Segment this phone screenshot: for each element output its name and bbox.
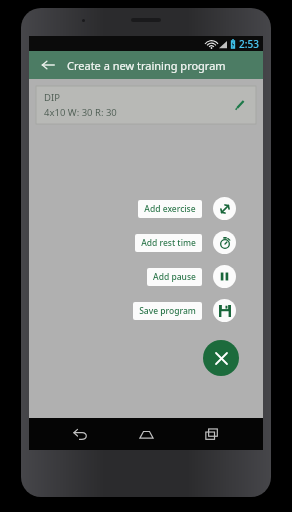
button[interactable]: Save program (133, 302, 202, 320)
staticText: Add exercise (144, 203, 196, 215)
staticText: Add pause (153, 271, 196, 283)
staticText: 4x10 W: 30 R: 30 (44, 106, 117, 119)
staticText: Create a new training program (67, 58, 226, 73)
button[interactable]: Add pause (147, 268, 202, 286)
button[interactable]: Back (65, 419, 95, 449)
button[interactable]: Add rest time (135, 234, 202, 252)
button[interactable]: Save program (213, 299, 236, 322)
button[interactable]: Add exercise (138, 200, 202, 218)
staticText: 2:53 (239, 37, 259, 51)
button[interactable]: Close menu (203, 340, 239, 376)
button[interactable]: Add rest time (213, 231, 236, 254)
button[interactable]: Home (131, 419, 161, 449)
button[interactable]: Back (37, 54, 59, 76)
staticText: Add rest time (141, 237, 196, 249)
staticText: Save program (139, 305, 196, 317)
button[interactable]: Add pause (213, 265, 236, 288)
button[interactable]: Add exercise (213, 197, 236, 220)
button[interactable]: Edit exercise (230, 95, 250, 115)
button[interactable]: Recents (197, 419, 227, 449)
button[interactable]: DIP (36, 86, 256, 124)
staticText: DIP (44, 91, 60, 104)
